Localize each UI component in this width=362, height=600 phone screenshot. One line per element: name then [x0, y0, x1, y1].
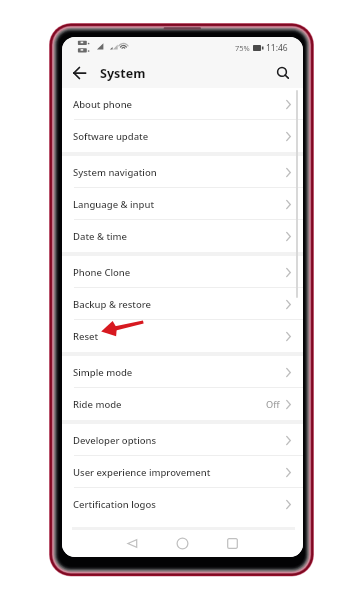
- staticText: Date & time: [73, 230, 128, 243]
- button[interactable]: Ride mode: [62, 388, 303, 420]
- staticText: Backup & restore: [73, 298, 152, 311]
- button[interactable]: Back: [68, 62, 90, 84]
- button[interactable]: Backup & restore: [62, 288, 303, 320]
- button[interactable]: Reset: [62, 320, 303, 352]
- button[interactable]: Simple mode: [62, 356, 303, 388]
- button[interactable]: Home: [168, 530, 196, 557]
- button[interactable]: Phone Clone: [62, 256, 303, 288]
- staticText: System navigation: [73, 166, 157, 179]
- button[interactable]: Software update: [62, 120, 303, 152]
- button[interactable]: Back: [118, 530, 146, 557]
- staticText: Certification logos: [73, 498, 156, 511]
- button[interactable]: Language & input: [62, 188, 303, 220]
- staticText: Ride mode: [73, 398, 122, 411]
- button[interactable]: System navigation: [62, 156, 303, 188]
- button[interactable]: User experience improvement: [62, 456, 303, 488]
- staticText: Language & input: [73, 198, 155, 211]
- staticText: About phone: [73, 98, 133, 111]
- button[interactable]: About phone: [62, 88, 303, 120]
- staticText: 75%: [235, 43, 250, 53]
- staticText: Developer options: [73, 434, 157, 447]
- staticText: Off: [266, 398, 280, 411]
- button[interactable]: Certification logos: [62, 488, 303, 520]
- button[interactable]: Developer options: [62, 424, 303, 456]
- staticText: Phone Clone: [73, 266, 131, 279]
- button[interactable]: Search: [272, 62, 294, 84]
- staticText: User experience improvement: [73, 466, 211, 479]
- staticText: System: [100, 65, 146, 82]
- staticText: Software update: [73, 130, 149, 143]
- staticText: 11:46: [266, 42, 288, 54]
- button[interactable]: Recents: [218, 530, 246, 557]
- staticText: Simple mode: [73, 366, 133, 379]
- button[interactable]: Date & time: [62, 220, 303, 252]
- staticText: Reset: [73, 330, 99, 343]
